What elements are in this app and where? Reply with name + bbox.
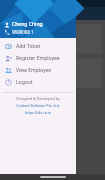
button[interactable]: https://tkt.co.in <box>25 110 51 115</box>
staticText: Services <box>7 36 25 42</box>
staticText: 9699088 1 <box>12 29 34 35</box>
button[interactable]: Add Ticket <box>0 40 76 52</box>
staticText: Add Ticket <box>16 43 41 50</box>
button[interactable] <box>3 58 102 88</box>
staticText: Designed & Developed by <box>16 96 60 101</box>
button[interactable]: Cheng Ching <box>4 21 43 35</box>
button[interactable]: Register Employee <box>0 52 76 64</box>
staticText: Logout <box>16 79 33 86</box>
button[interactable]: View Employee <box>0 64 76 76</box>
staticText: https://tkt.co.in <box>25 110 51 115</box>
button[interactable]: Cedorid Software Pvt. Ltd. <box>16 103 60 108</box>
button[interactable]: Logout <box>0 76 76 88</box>
staticText: Cedorid Software Pvt. Ltd. <box>16 103 60 108</box>
staticText: View Employee <box>16 67 52 74</box>
button[interactable]: Services <box>3 24 102 54</box>
staticText: Cheng Ching <box>12 21 43 28</box>
staticText: Register Employee <box>16 55 60 62</box>
